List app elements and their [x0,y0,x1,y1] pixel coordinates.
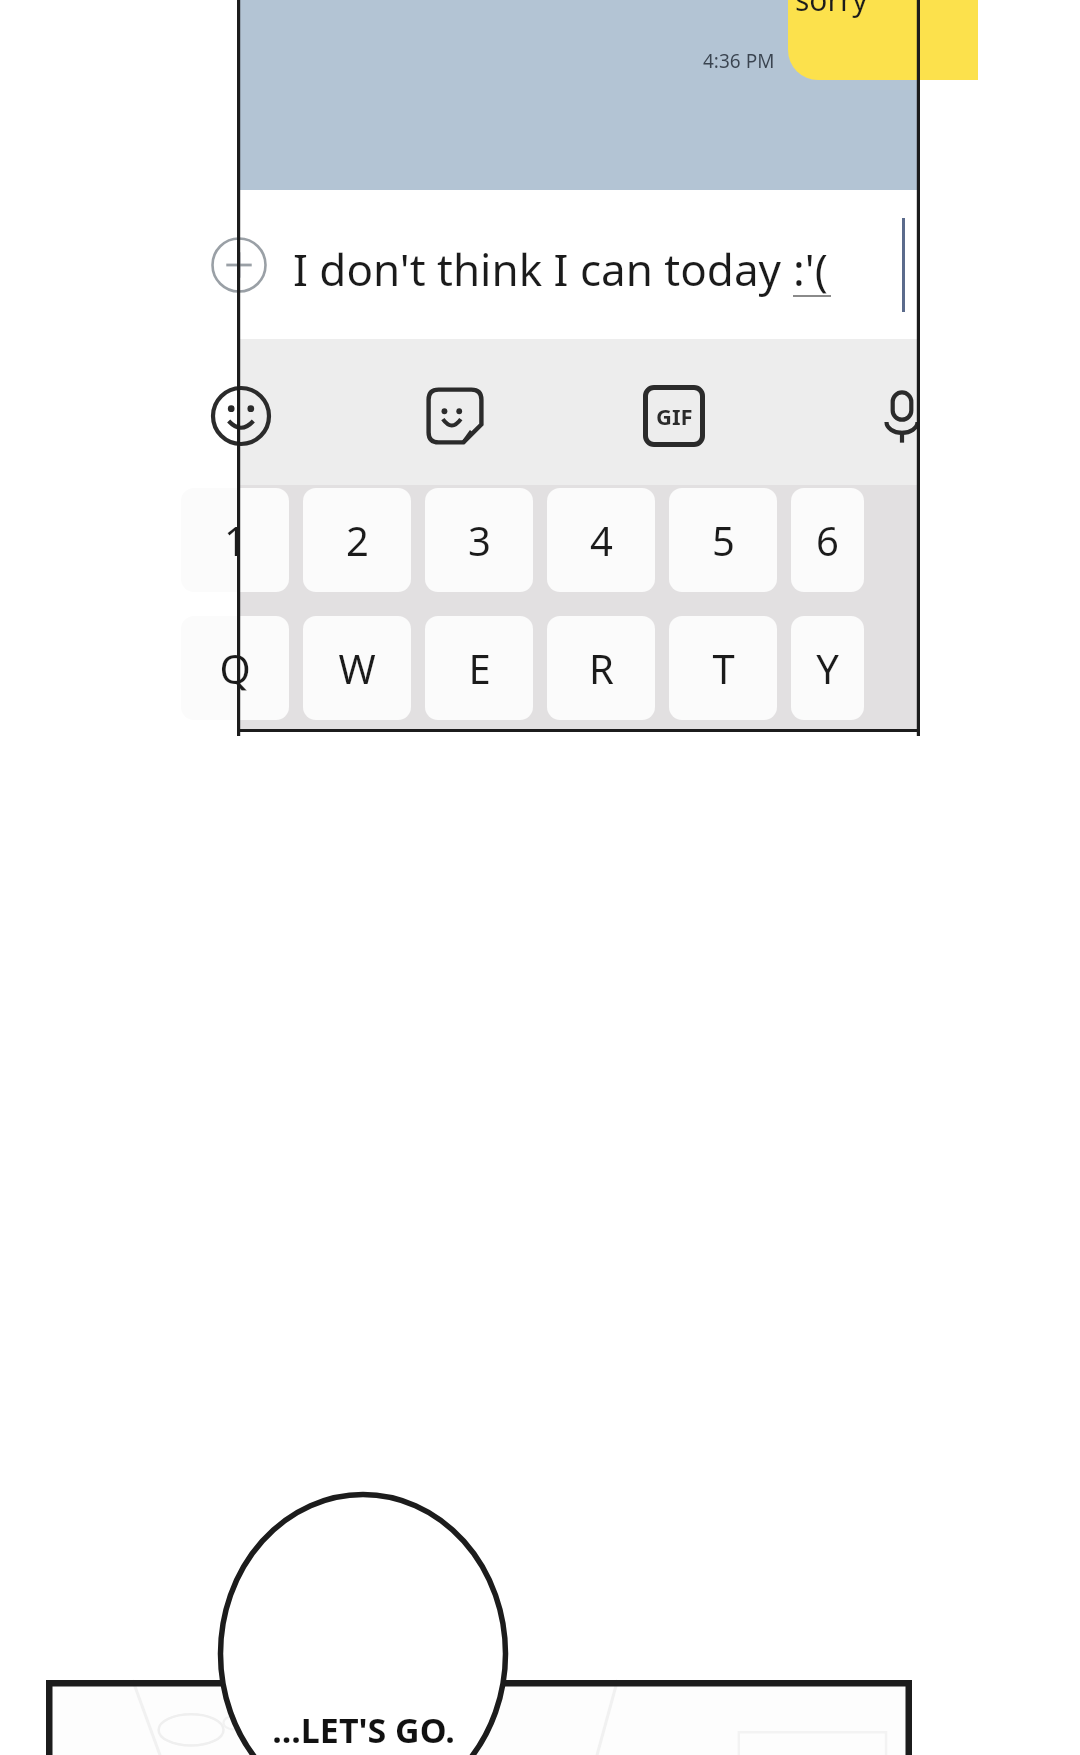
staticText: ...LET'S GO. [272,1707,455,1753]
button[interactable]: GIF [643,385,705,447]
staticText: :'( [793,239,828,299]
button[interactable]: Voice input [871,385,933,447]
button[interactable]: Attach [211,237,267,293]
button[interactable]: T [669,616,777,720]
button[interactable]: 1 [181,488,289,592]
staticText: 2 [346,513,369,567]
button[interactable]: sorry [788,0,978,80]
button[interactable]: 6 [791,488,864,592]
button[interactable]: Q [181,616,289,720]
button[interactable]: 5 [669,488,777,592]
staticText: Y [816,641,839,695]
button[interactable]: 4 [547,488,655,592]
staticText: 5 [712,513,735,567]
button[interactable]: R [547,616,655,720]
staticText: GIF [656,401,693,431]
staticText: 4 [590,513,613,567]
staticText: T [712,641,735,695]
button[interactable]: W [303,616,411,720]
staticText: I don't think I can today [293,239,793,299]
staticText: 3 [468,513,491,567]
staticText: 4:36 PM [703,48,775,74]
staticText: 6 [816,513,839,567]
staticText: W [338,641,376,695]
staticText: 1 [224,513,247,567]
staticText: sorry [795,0,868,20]
button[interactable]: Emoji [211,386,271,446]
button[interactable]: 3 [425,488,533,592]
button[interactable]: Y [791,616,864,720]
button[interactable]: 2 [303,488,411,592]
staticText: E [468,641,491,695]
button[interactable]: I don't think I can today [293,239,831,299]
button[interactable]: E [425,616,533,720]
staticText: R [589,641,614,695]
button[interactable]: Stickers [422,383,488,449]
staticText: Q [219,641,251,695]
